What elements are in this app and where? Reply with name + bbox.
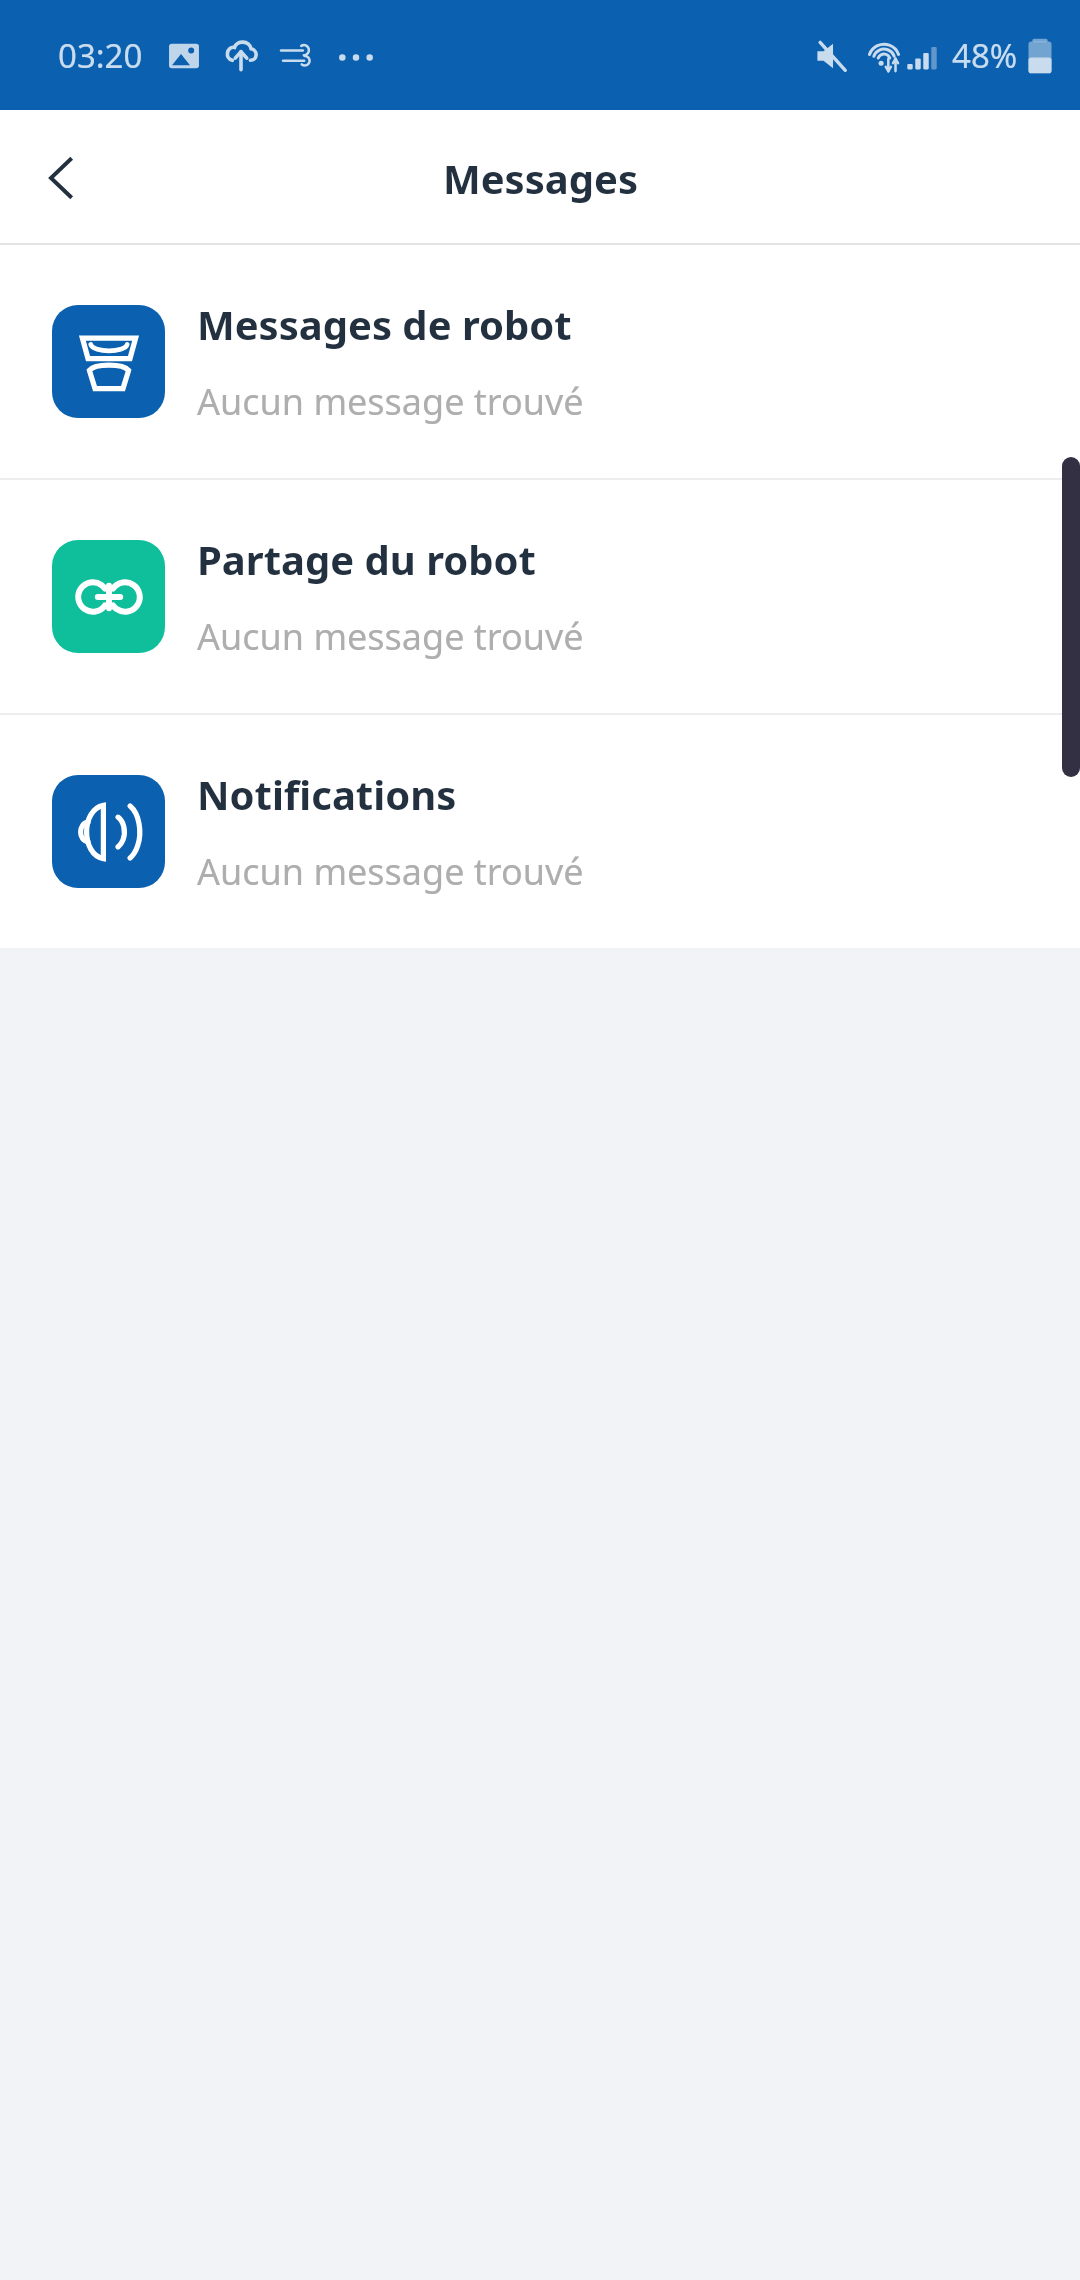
staticText: 03:20: [58, 33, 143, 78]
staticText: Messages de robot: [197, 297, 572, 351]
staticText: 48%: [952, 33, 1018, 78]
button[interactable]: Messages de robot: [0, 245, 1080, 478]
staticText: Notifications: [197, 767, 457, 821]
staticText: Aucun message trouvé: [197, 377, 584, 426]
button[interactable]: Back: [14, 130, 110, 226]
button[interactable]: Partage du robot: [0, 480, 1080, 713]
staticText: Messages: [443, 151, 638, 205]
staticText: Aucun message trouvé: [197, 612, 584, 661]
staticText: Partage du robot: [197, 532, 536, 586]
staticText: Aucun message trouvé: [197, 847, 584, 896]
button[interactable]: Notifications: [0, 715, 1080, 948]
